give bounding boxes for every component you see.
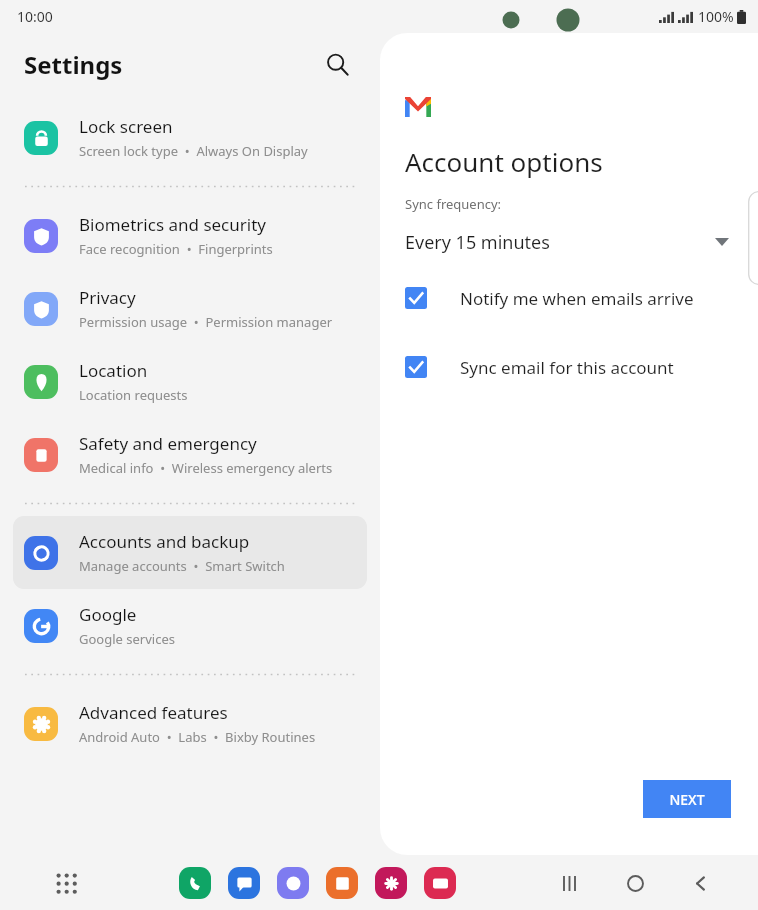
staticText: Notify me when emails arrive xyxy=(460,287,694,310)
staticText: Sync email for this account xyxy=(460,356,674,379)
staticText: Permission usage • Permission manager xyxy=(79,313,333,331)
button[interactable]: Back xyxy=(682,865,718,901)
staticText: Privacy xyxy=(79,286,136,309)
staticText: Every 15 minutes xyxy=(405,230,550,255)
staticText: Lock screen xyxy=(79,115,173,138)
button[interactable]: Phone xyxy=(179,867,211,899)
button[interactable]: Apps xyxy=(49,866,83,900)
button[interactable]: Privacy xyxy=(13,272,367,345)
staticText: Android Auto • Labs • Bixby Routines xyxy=(79,728,316,746)
staticText: Safety and emergency xyxy=(79,432,257,455)
staticText: Accounts and backup xyxy=(79,530,250,553)
staticText: Google xyxy=(79,603,137,626)
staticText: 100% xyxy=(698,7,734,26)
staticText: Google services xyxy=(79,630,175,648)
button[interactable]: Advanced features xyxy=(13,687,367,760)
button[interactable]: Internet xyxy=(277,867,309,899)
button[interactable]: Sync email for this account xyxy=(405,351,758,383)
staticText: Medical info • Wireless emergency alerts xyxy=(79,459,333,477)
staticText: 10:00 xyxy=(17,7,53,26)
button[interactable]: Lock screen xyxy=(13,101,367,174)
button[interactable]: Every 15 minutes xyxy=(405,225,758,259)
button[interactable]: Google xyxy=(13,589,367,662)
staticText: Advanced features xyxy=(79,701,228,724)
staticText: Manage accounts • Smart Switch xyxy=(79,557,285,575)
staticText: Location xyxy=(79,359,148,382)
staticText: Location requests xyxy=(79,386,188,404)
button[interactable]: Recents xyxy=(552,865,588,901)
staticText: Biometrics and security xyxy=(79,213,266,236)
button[interactable]: Location xyxy=(13,345,367,418)
button[interactable]: Messages xyxy=(228,867,260,899)
button[interactable]: Notes xyxy=(326,867,358,899)
staticText: Settings xyxy=(24,48,123,81)
button[interactable]: Biometrics and security xyxy=(13,199,367,272)
button[interactable]: Accounts and backup xyxy=(13,516,367,589)
button[interactable]: Camera xyxy=(424,867,456,899)
button[interactable]: Home xyxy=(617,865,653,901)
staticText: Sync frequency: xyxy=(405,195,502,213)
button[interactable]: Notify me when emails arrive xyxy=(405,282,758,314)
button[interactable]: NEXT xyxy=(643,780,731,818)
button[interactable]: Safety and emergency xyxy=(13,418,367,491)
staticText: NEXT xyxy=(669,790,705,809)
staticText: Screen lock type • Always On Display xyxy=(79,142,308,160)
button[interactable]: Gallery xyxy=(375,867,407,899)
staticText: Account options xyxy=(405,144,603,179)
button[interactable]: Search xyxy=(316,43,358,85)
staticText: Face recognition • Fingerprints xyxy=(79,240,273,258)
